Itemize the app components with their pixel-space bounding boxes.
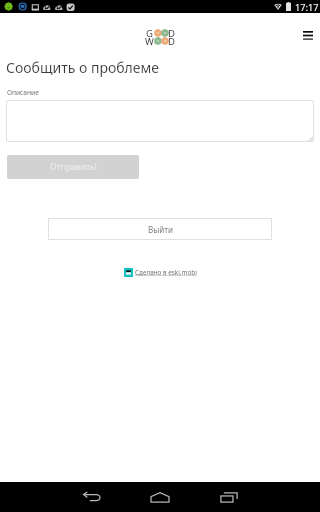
staticText: W — [145, 35, 154, 48]
staticText: Описание — [7, 88, 39, 97]
staticText: D — [168, 35, 175, 48]
button[interactable]: Menu — [294, 21, 320, 47]
staticText: Сделано в eski.mobi — [135, 268, 197, 277]
button[interactable]: Home — [136, 483, 184, 511]
staticText: G — [146, 27, 153, 40]
staticText: Сообщить о проблеме — [6, 58, 160, 77]
button[interactable]: Выйти — [48, 218, 272, 240]
staticText: Отправить! — [50, 161, 97, 173]
button[interactable]: Back — [68, 483, 116, 511]
button[interactable] — [6, 100, 314, 142]
staticText: Выйти — [148, 224, 173, 235]
button[interactable]: Отправить! — [7, 155, 139, 179]
button[interactable]: Recents — [205, 483, 253, 511]
staticText: D — [168, 27, 175, 40]
staticText: 17:17 — [295, 1, 319, 14]
button[interactable]: Сделано в eski.mobi — [124, 268, 197, 277]
